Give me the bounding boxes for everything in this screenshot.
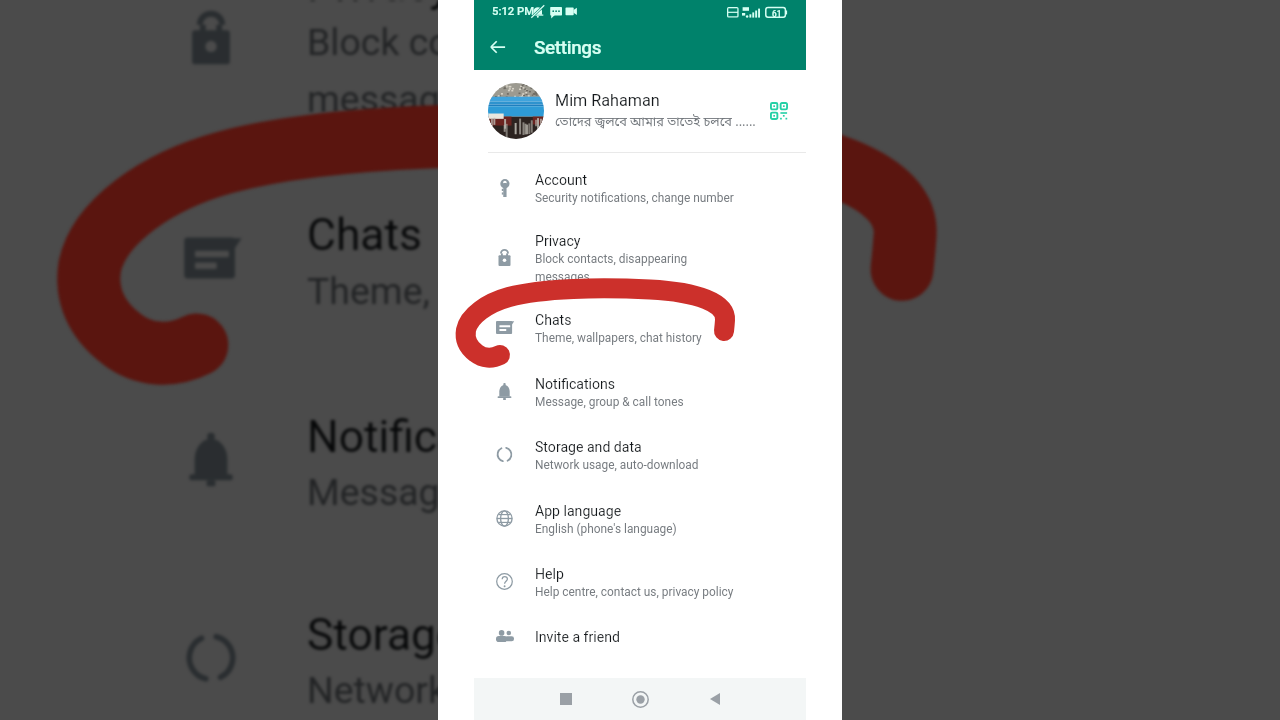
button[interactable]: Privacy xyxy=(115,0,1160,156)
staticText: Block contacts, disappearing messages xyxy=(307,20,955,118)
button[interactable]: Help xyxy=(474,550,806,613)
button[interactable]: QR code xyxy=(762,94,796,128)
staticText: Settings xyxy=(534,36,602,58)
staticText: 5:12 PM xyxy=(492,5,535,18)
button[interactable]: Home xyxy=(603,678,677,720)
staticText: Message, group & call tones xyxy=(307,470,776,515)
button[interactable]: Recent apps xyxy=(528,678,603,720)
staticText: Chats xyxy=(535,312,572,329)
staticText: 61 xyxy=(772,9,782,19)
button[interactable]: Account xyxy=(474,156,806,219)
button[interactable]: Privacy xyxy=(474,219,806,295)
staticText: Theme, wallpapers, chat history xyxy=(535,331,702,345)
button[interactable]: Chats xyxy=(115,156,1160,357)
staticText: Theme, wallpapers, chat history xyxy=(307,269,833,313)
staticText: Invite a friend xyxy=(535,629,620,646)
staticText: তোদের জ্বলবে আমার তাতেই চলবে ...... xyxy=(555,114,756,131)
button[interactable]: Back xyxy=(482,31,514,63)
button[interactable]: Back xyxy=(677,678,752,720)
staticText: Security notifications, change number xyxy=(535,191,734,205)
button[interactable]: Chats xyxy=(474,295,806,359)
button[interactable]: Storage and data xyxy=(115,559,1160,720)
staticText: Storage and data xyxy=(307,609,644,662)
staticText: Message, group & call tones xyxy=(535,395,684,409)
staticText: Network usage, auto-download xyxy=(307,669,823,713)
staticText: Notifications xyxy=(535,376,616,393)
staticText: Account xyxy=(535,172,588,189)
staticText: Mim Rahaman xyxy=(555,91,660,110)
staticText: Chats xyxy=(307,209,423,263)
button[interactable]: App language xyxy=(474,486,806,550)
button[interactable]: Storage and data xyxy=(474,423,806,486)
staticText: App language xyxy=(535,503,622,520)
staticText: Network usage, auto-download xyxy=(535,458,699,472)
button[interactable]: Notifications xyxy=(474,359,806,423)
staticText: Block contacts, disappearing messages xyxy=(535,252,741,283)
staticText: Storage and data xyxy=(535,439,642,456)
staticText: English (phone's language) xyxy=(535,522,677,536)
staticText: Privacy xyxy=(307,0,452,14)
button[interactable]: Invite a friend xyxy=(474,613,806,659)
staticText: Help xyxy=(535,566,564,583)
staticText: Help centre, contact us, privacy policy xyxy=(535,585,734,599)
button[interactable]: Notifications xyxy=(115,357,1160,559)
staticText: Notifications xyxy=(307,411,562,464)
button[interactable]: Mim Rahaman xyxy=(474,70,806,152)
staticText: Privacy xyxy=(535,233,581,250)
